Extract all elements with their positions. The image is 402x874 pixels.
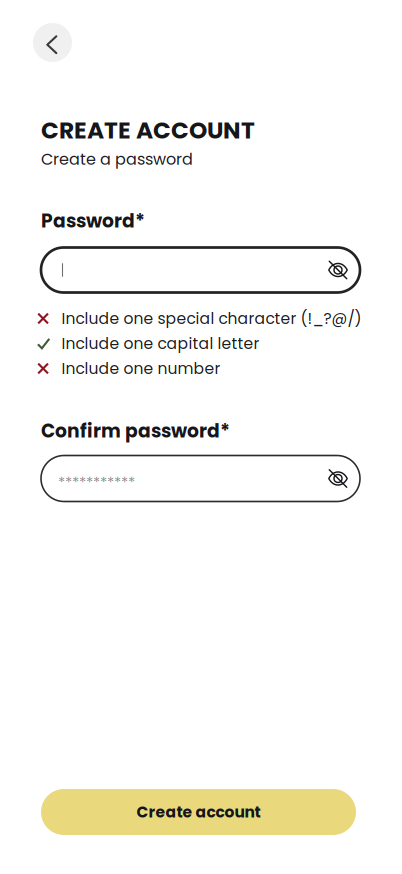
staticText: *********** bbox=[58, 472, 135, 493]
staticText: Create a password bbox=[41, 148, 193, 170]
staticText: Create account bbox=[136, 801, 260, 823]
staticText: Include one special character (!_?@/) bbox=[61, 308, 361, 329]
staticText: Include one number bbox=[61, 358, 220, 379]
button[interactable]: Show password bbox=[320, 252, 356, 288]
staticText: Include one capital letter bbox=[61, 333, 259, 354]
button[interactable]: Show confirm password bbox=[320, 460, 356, 496]
staticText: Password* bbox=[41, 208, 145, 234]
button[interactable]: Create account bbox=[41, 789, 356, 835]
button[interactable]: Back bbox=[33, 23, 72, 62]
staticText: CREATE ACCOUNT bbox=[41, 114, 255, 147]
staticText: Confirm password* bbox=[41, 418, 230, 444]
